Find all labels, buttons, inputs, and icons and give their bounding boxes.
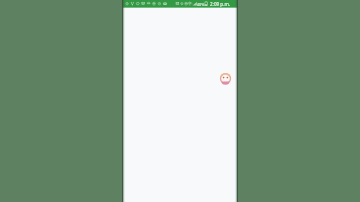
button[interactable]: Status bar xyxy=(122,0,238,8)
staticText: 2:09 p.m. xyxy=(210,1,231,7)
staticText: 40% xyxy=(197,2,205,7)
button[interactable]: App logo xyxy=(217,70,234,87)
